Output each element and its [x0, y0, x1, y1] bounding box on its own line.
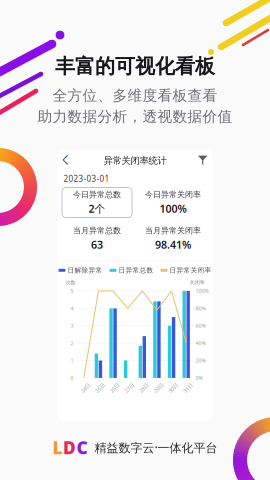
staticText: 30日 [168, 384, 179, 391]
staticText: 98.41% [155, 237, 191, 252]
staticText: 60% [195, 322, 205, 329]
staticText: 次数 [65, 279, 75, 286]
staticText: 日异常总数 [118, 266, 153, 274]
staticText: 日异常关闭率 [169, 266, 211, 274]
staticText: 2023-03-01 [63, 173, 109, 184]
staticText: 今日异常总数 [73, 190, 121, 199]
staticText: 今日异常关闭率 [145, 190, 201, 199]
staticText: 100% [195, 287, 208, 294]
staticText: 100% [159, 201, 186, 216]
staticText: 3 [70, 322, 73, 329]
staticText: 异常关闭率统计 [103, 155, 166, 166]
staticText: 27日 [124, 384, 135, 391]
staticText: 2 [70, 340, 73, 347]
staticText: 5 [70, 287, 73, 294]
staticText: L [52, 436, 62, 459]
staticText: 当月异常关闭率 [145, 226, 201, 235]
staticText: 63 [91, 237, 103, 252]
staticText: 29日 [153, 384, 164, 391]
staticText: 关闭率 [189, 279, 204, 286]
staticText: 24日 [80, 384, 91, 391]
staticText: 全方位、多维度看板查看 [52, 87, 217, 105]
staticText: 31日 [182, 384, 193, 391]
staticText: 0% [195, 374, 202, 381]
staticText: 精益数字云·一体化平台 [94, 439, 217, 455]
staticText: 80% [195, 305, 205, 312]
staticText: 2个 [88, 201, 105, 216]
staticText: 28日 [138, 384, 149, 391]
staticText: C [76, 436, 87, 459]
staticText: D [63, 436, 76, 459]
staticText: 助力数据分析，透视数据价值 [37, 108, 232, 126]
button[interactable]: Back [57, 151, 74, 170]
staticText: 0 [70, 374, 73, 381]
staticText: 当月异常总数 [73, 226, 121, 235]
staticText: 日解除异常 [67, 266, 102, 274]
staticText: 4 [70, 305, 73, 312]
staticText: 丰富的可视化看板 [55, 54, 215, 79]
staticText: 26日 [109, 384, 120, 391]
staticText: 20% [195, 357, 205, 364]
staticText: 40% [195, 340, 205, 347]
staticText: 25日 [94, 384, 105, 391]
button[interactable]: Filter [193, 152, 212, 170]
staticText: 1 [70, 357, 73, 364]
